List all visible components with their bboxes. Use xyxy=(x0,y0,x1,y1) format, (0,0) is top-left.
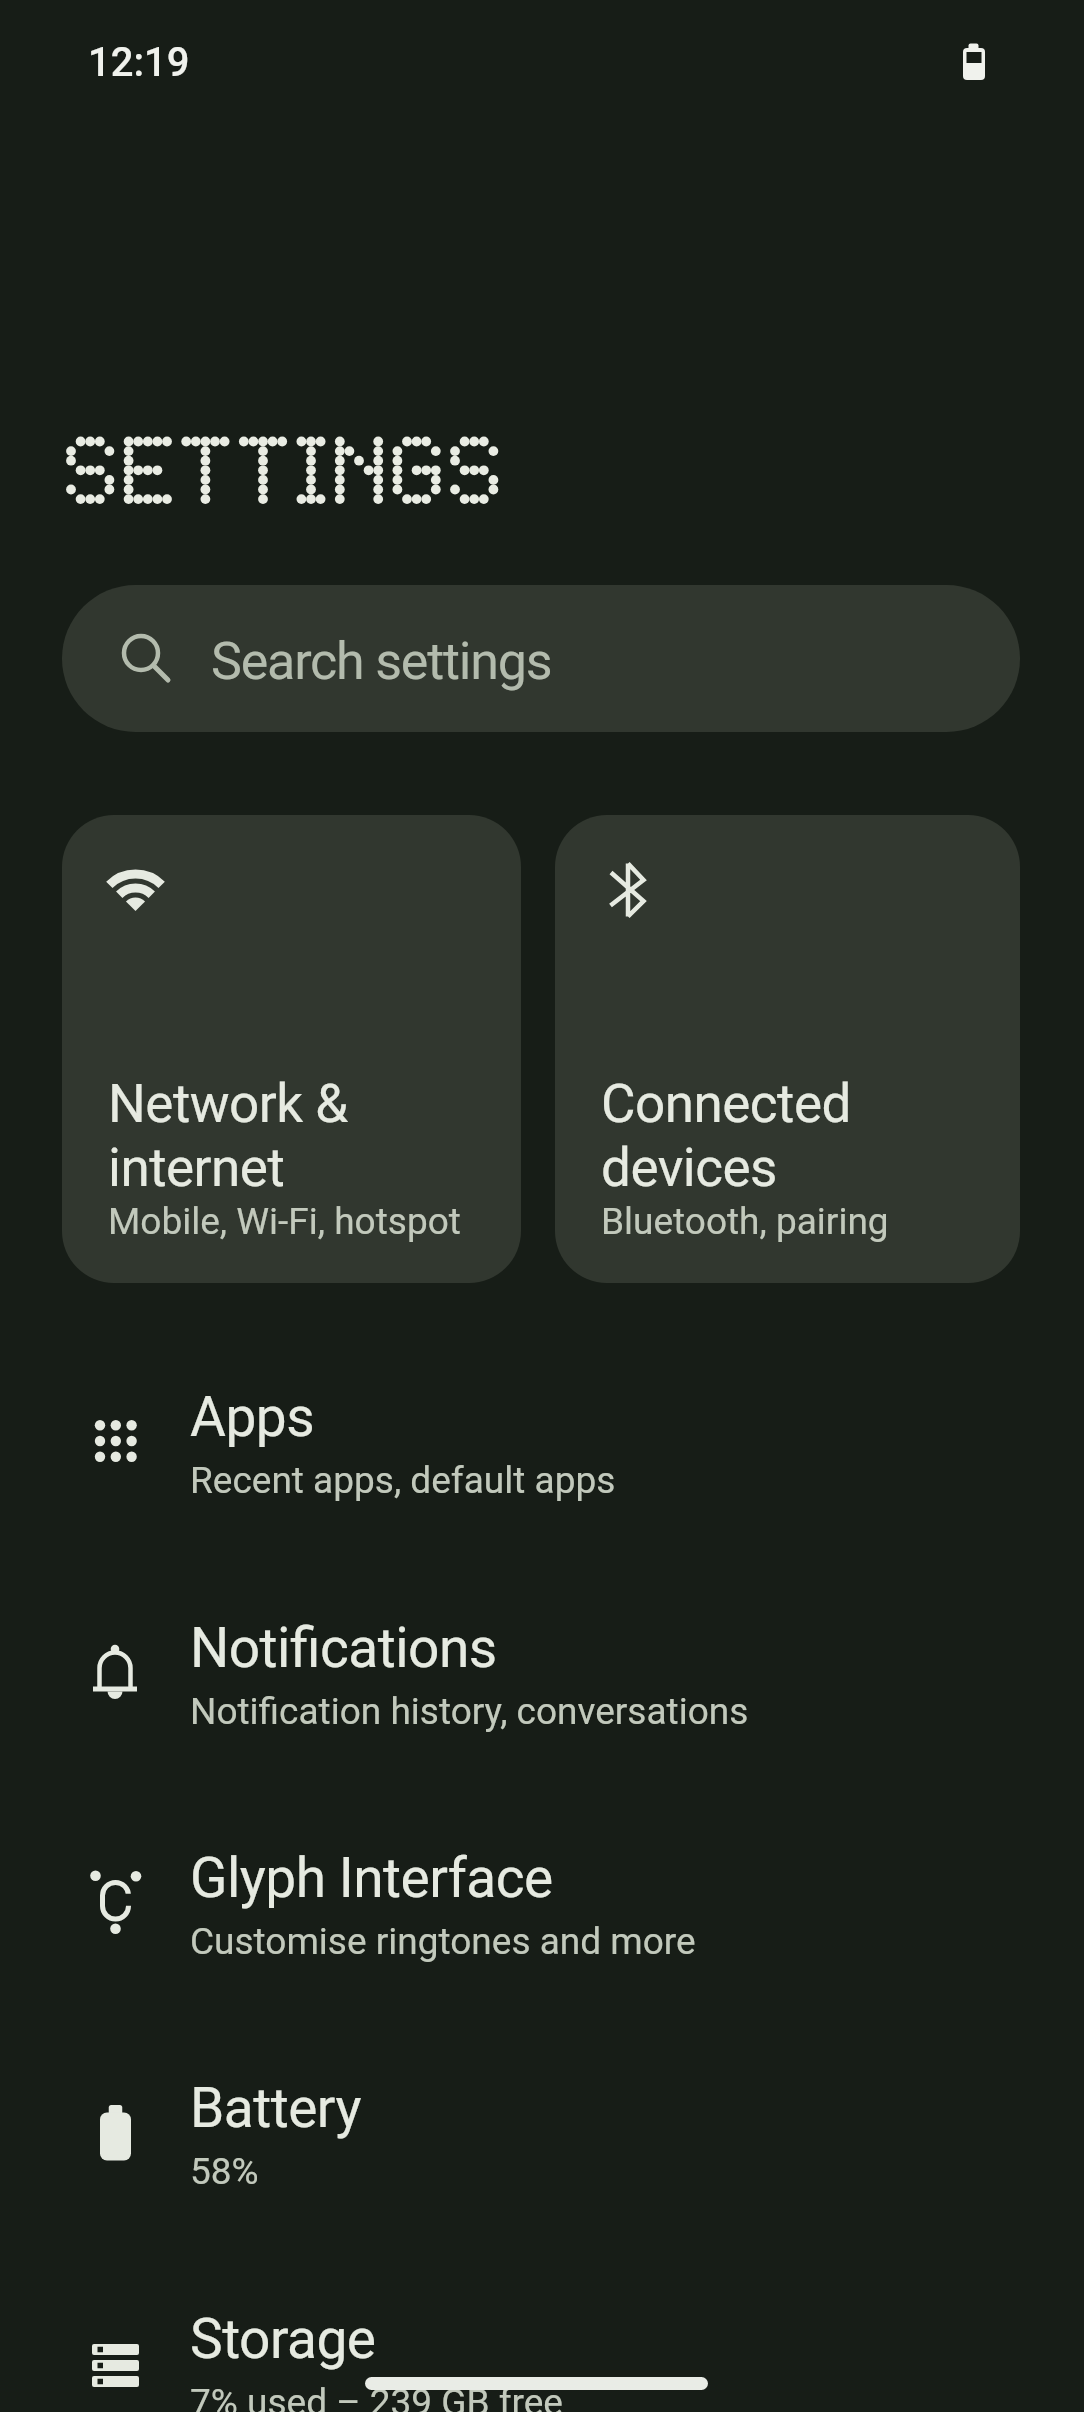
staticText: Customise ringtones and more xyxy=(190,1920,696,1963)
staticText: Notifications xyxy=(190,1616,497,1680)
button[interactable]: Apps xyxy=(0,1337,1084,1569)
staticText: Bluetooth, pairing xyxy=(601,1200,889,1243)
button[interactable]: Storage xyxy=(0,2259,1084,2412)
staticText: Battery xyxy=(190,2076,361,2140)
staticText: devices xyxy=(601,1137,777,1199)
staticText: Connected xyxy=(601,1073,851,1135)
staticText: Apps xyxy=(190,1385,315,1449)
staticText: Network & xyxy=(108,1073,348,1135)
staticText: 12:19 xyxy=(88,39,190,86)
staticText: Glyph Interface xyxy=(190,1846,553,1910)
button[interactable]: Notifications xyxy=(0,1568,1084,1800)
staticText: Recent apps, default apps xyxy=(190,1459,616,1502)
staticText: Storage xyxy=(190,2307,376,2371)
button[interactable]: Glyph Interface xyxy=(0,1798,1084,2030)
button[interactable]: Battery xyxy=(0,2028,1084,2260)
staticText: Search settings xyxy=(211,631,552,692)
button[interactable]: Search settings xyxy=(62,585,1020,732)
staticText: 58% xyxy=(190,2150,259,2193)
button[interactable]: Network & xyxy=(62,815,521,1283)
staticText: internet xyxy=(108,1137,285,1199)
staticText: Mobile, Wi-Fi, hotspot xyxy=(108,1200,461,1243)
staticText: Notification history, conversations xyxy=(190,1690,749,1733)
button[interactable]: Connected xyxy=(555,815,1020,1283)
staticText: 7% used – 239 GB free xyxy=(190,2381,563,2412)
